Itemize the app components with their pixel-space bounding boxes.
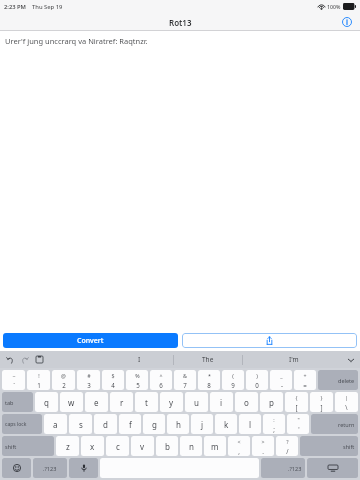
button[interactable]: j [191,414,213,434]
button[interactable]: # [77,370,100,390]
button[interactable]: s [69,414,92,434]
button[interactable]: * [198,370,220,390]
staticText: n [189,441,194,452]
staticText: caps lock [5,421,27,428]
button[interactable]: " [287,414,309,434]
button[interactable]: & [174,370,196,390]
button[interactable]: Paste [34,354,45,365]
button[interactable]: ? [276,436,298,456]
staticText: ] [320,403,323,411]
button[interactable]: v [131,436,154,456]
button[interactable]: < [228,436,250,456]
staticText: y [169,397,174,408]
staticText: 2 [62,381,66,389]
button[interactable]: $ [102,370,124,390]
button[interactable]: e [85,392,108,412]
button[interactable]: : [263,414,285,434]
button[interactable]: i [210,392,233,412]
button[interactable]: l [239,414,261,434]
staticText: t [145,397,148,408]
button[interactable]: Emoji [2,458,31,478]
button[interactable]: ( [222,370,244,390]
button[interactable]: ) [246,370,268,390]
button[interactable]: % [126,370,148,390]
button[interactable]: Convert [3,333,178,348]
button[interactable]: y [160,392,183,412]
button[interactable]: t [135,392,158,412]
button[interactable]: r [110,392,133,412]
staticText: delete [338,377,355,384]
staticText: shift [5,443,17,450]
staticText: Urer'f jung unccrarq va Niratref: Raqtnz… [5,36,148,46]
button[interactable]: ^ [150,370,172,390]
staticText: ` [13,381,15,389]
button[interactable]: h [167,414,189,434]
staticText: ) [256,372,258,379]
button[interactable]: I [105,351,173,368]
button[interactable]: { [285,392,308,412]
button[interactable]: + [294,370,316,390]
button[interactable]: w [60,392,83,412]
staticText: g [152,419,157,430]
staticText: . [262,447,264,455]
button[interactable]: _ [270,370,292,390]
button[interactable]: tab [2,392,33,412]
staticText: $ [111,372,115,379]
button[interactable]: g [143,414,165,434]
button[interactable]: n [180,436,202,456]
button[interactable]: Redo [19,354,30,365]
staticText: .?123 [43,465,57,472]
button[interactable]: c [106,436,129,456]
button[interactable]: m [204,436,226,456]
button[interactable]: Info [340,15,354,29]
staticText: 1 [37,381,41,389]
button[interactable]: o [235,392,258,412]
button[interactable]: Share [182,333,357,348]
button[interactable]: Undo [4,354,15,365]
staticText: d [103,419,108,430]
button[interactable]: q [35,392,58,412]
staticText: | [345,394,348,401]
button[interactable]: delete [318,370,358,390]
staticText: e [94,397,99,408]
staticText: j [201,419,204,430]
button[interactable]: @ [52,370,75,390]
staticText: 8 [207,381,211,389]
staticText: 3 [87,381,91,389]
button[interactable]: shift [2,436,54,456]
button[interactable]: .?123 [261,458,305,478]
button[interactable]: ! [27,370,50,390]
staticText: c [116,441,120,452]
button[interactable]: z [56,436,79,456]
button[interactable]: | [335,392,358,412]
button[interactable]: Hide keyboard [307,458,358,478]
staticText: o [244,397,249,408]
button[interactable]: p [260,392,283,412]
button[interactable]: Dictation [69,458,98,478]
button[interactable]: > [252,436,274,456]
button[interactable]: f [119,414,141,434]
button[interactable]: a [44,414,67,434]
button[interactable]: return [311,414,358,434]
button[interactable]: x [81,436,104,456]
staticText: k [224,419,229,430]
button[interactable]: u [185,392,208,412]
button[interactable]: k [215,414,237,434]
staticText: + [303,372,307,379]
button[interactable]: } [310,392,333,412]
button[interactable]: Hide keyboard [344,353,357,366]
staticText: 100% [327,3,341,10]
staticText: shift [343,443,355,450]
staticText: \ [345,403,348,411]
button[interactable]: ~ [2,370,25,390]
button[interactable]: I'm [243,351,344,368]
button[interactable]: The [174,351,242,368]
staticText: x [90,441,95,452]
staticText: f [129,419,132,430]
button[interactable]: caps lock [2,414,42,434]
button[interactable]: d [94,414,117,434]
button[interactable]: b [156,436,178,456]
button[interactable]: .?123 [33,458,67,478]
button[interactable]: shift [300,436,358,456]
